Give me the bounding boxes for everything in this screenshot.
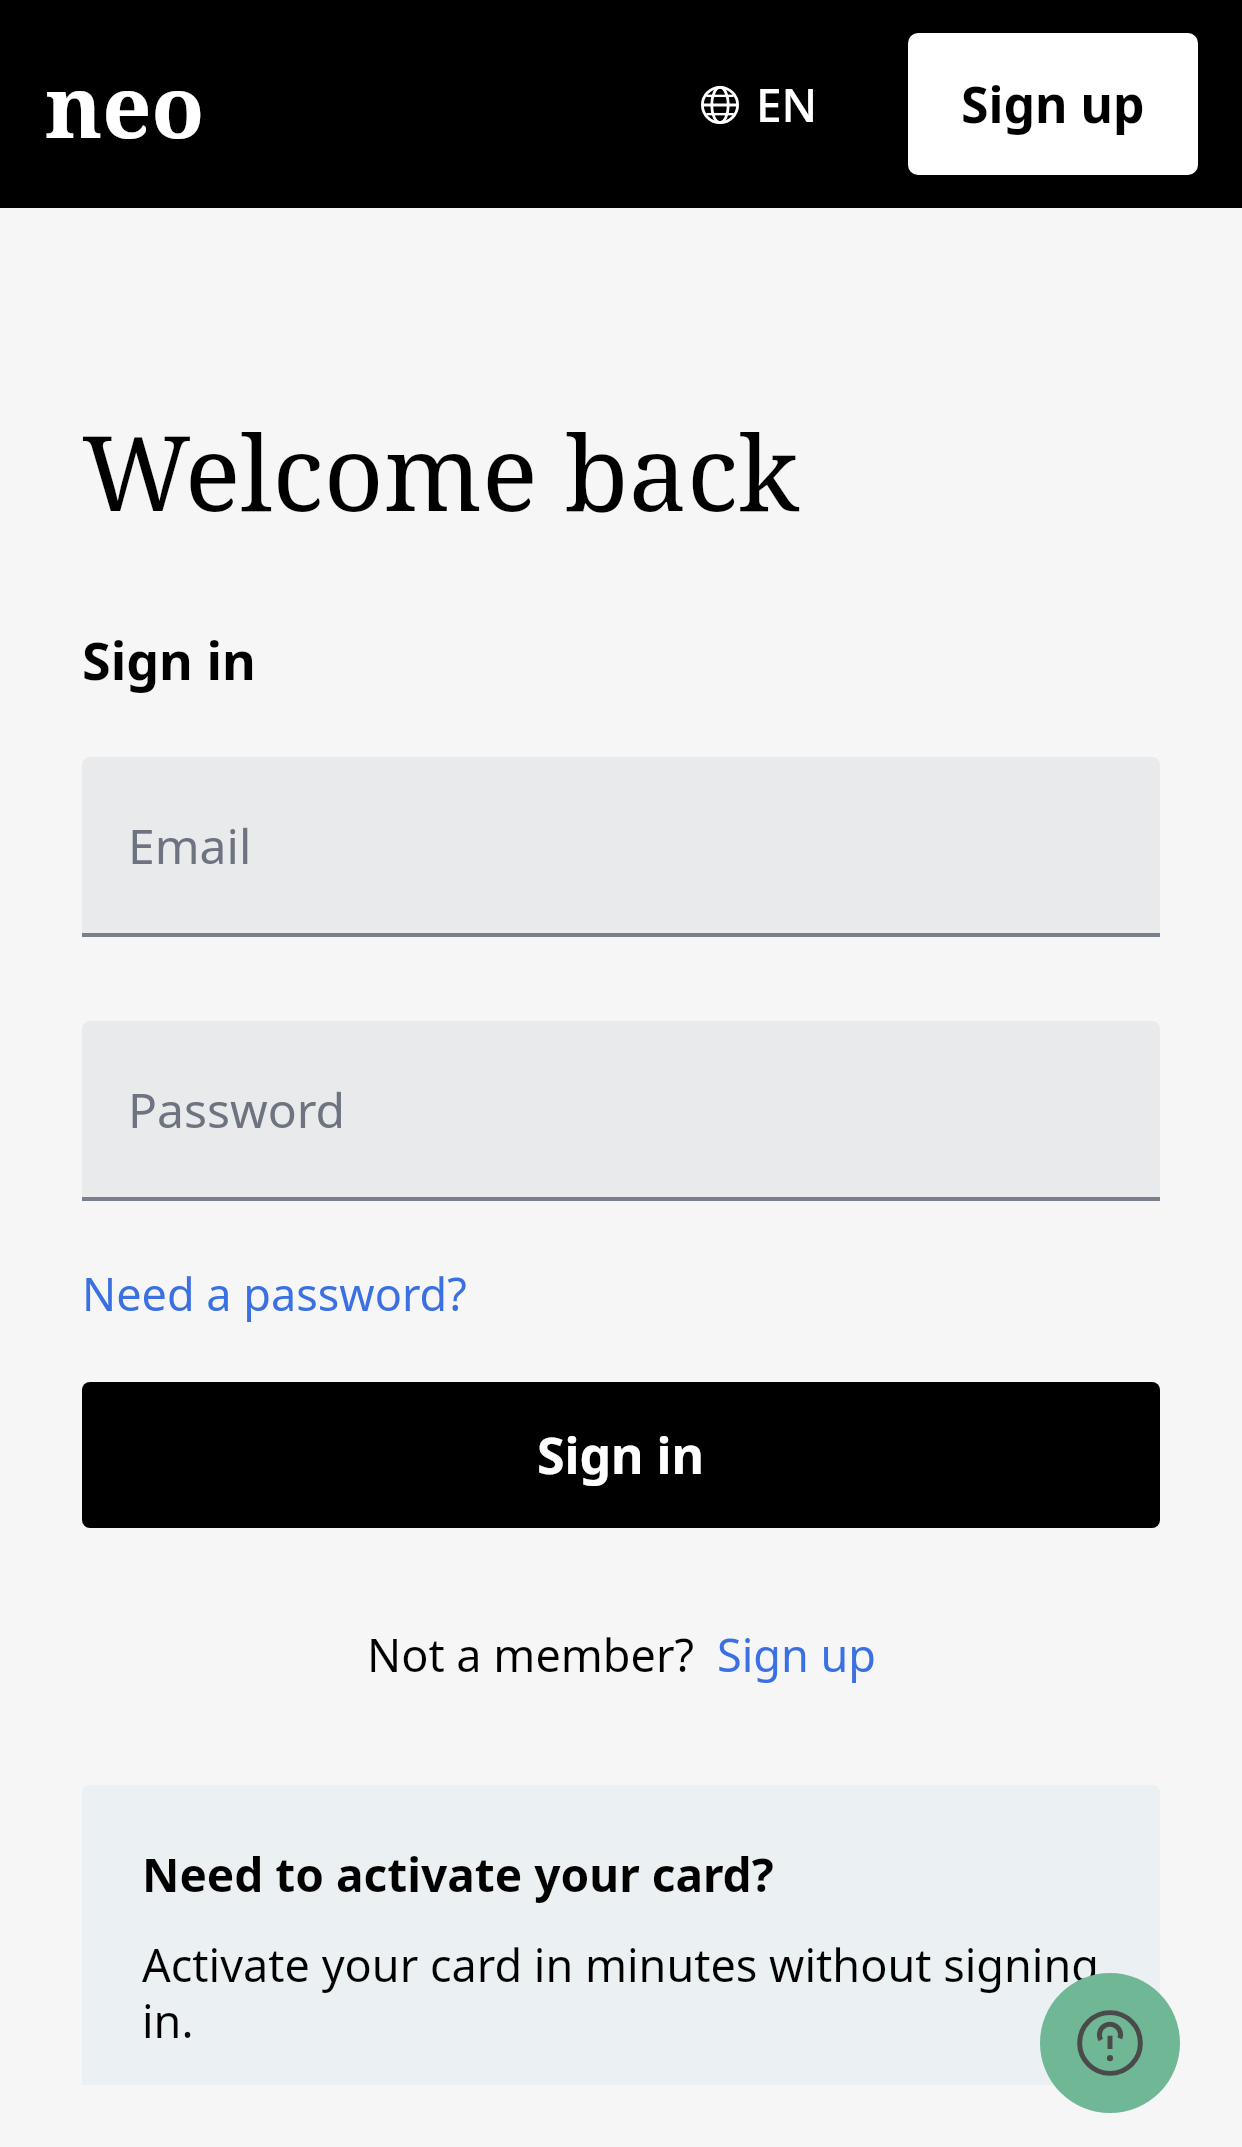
button[interactable]: Sign up: [908, 33, 1198, 175]
button[interactable]: Help: [1040, 1973, 1180, 2113]
staticText: Sign in: [82, 624, 256, 695]
staticText: neo: [45, 46, 205, 163]
staticText: Sign in: [537, 1421, 705, 1489]
button[interactable]: Sign up: [717, 1624, 876, 1685]
staticText: Sign up: [961, 70, 1145, 138]
staticText: Need to activate your card?: [142, 1843, 774, 1906]
button[interactable]: Need a password?: [82, 1263, 467, 1324]
staticText: Not a member?: [367, 1624, 695, 1685]
staticText: Activate your card in minutes without si…: [142, 1934, 1120, 2051]
button[interactable]: Password: [82, 1021, 1160, 1201]
staticText: Password: [128, 1077, 346, 1142]
button[interactable]: Need to activate your card?: [82, 1785, 1160, 2085]
button[interactable]: Email: [82, 757, 1160, 937]
staticText: Email: [128, 813, 252, 878]
staticText: Welcome back: [82, 400, 800, 542]
button[interactable]: neo home: [45, 46, 205, 163]
staticText: Need a password?: [82, 1263, 467, 1324]
button[interactable]: Language EN: [700, 73, 818, 136]
staticText: EN: [756, 73, 818, 136]
staticText: Sign up: [717, 1624, 876, 1685]
button[interactable]: Sign in: [82, 1382, 1160, 1528]
